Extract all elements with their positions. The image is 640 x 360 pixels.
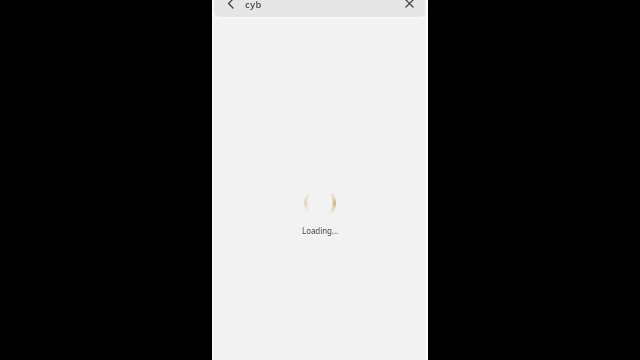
button[interactable]: Back <box>221 0 239 12</box>
button[interactable]: cyb <box>245 0 262 11</box>
staticText: cyb <box>245 0 262 11</box>
button[interactable]: Close <box>400 0 418 12</box>
staticText: Loading... <box>302 225 338 236</box>
